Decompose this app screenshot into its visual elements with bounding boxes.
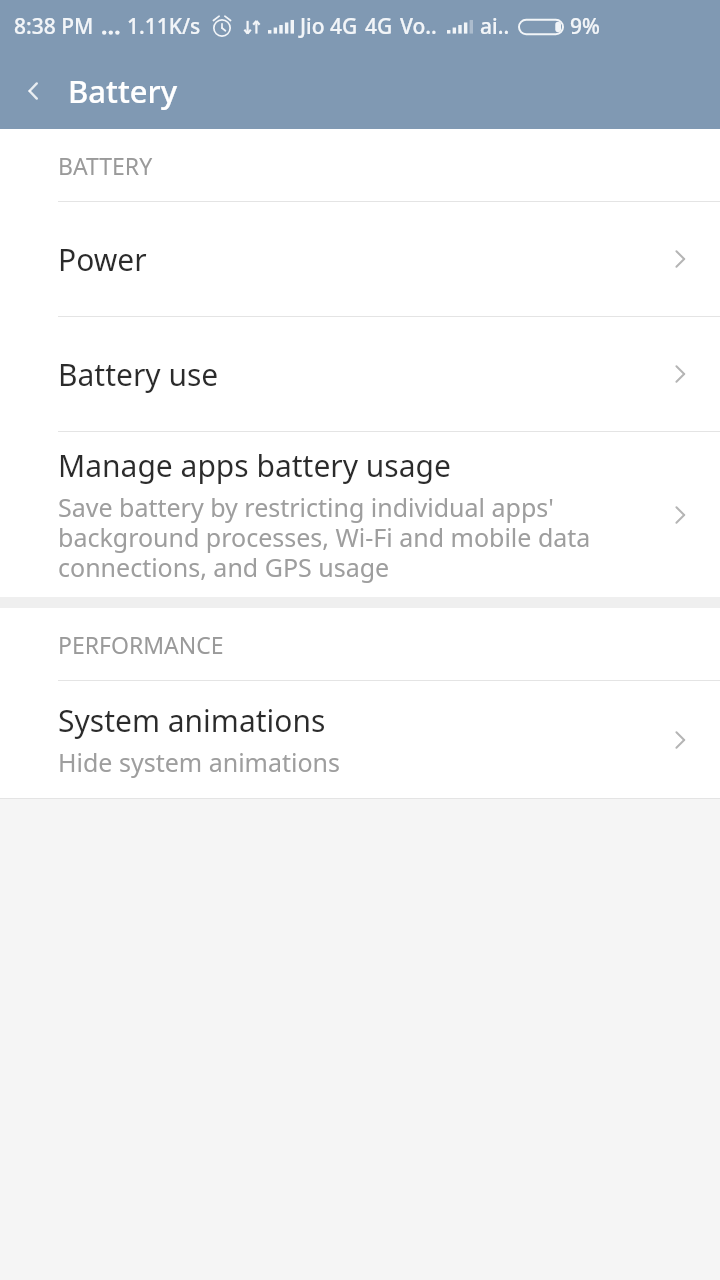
staticText: Manage apps battery usage [58, 445, 451, 486]
staticText: PERFORMANCE [58, 629, 224, 660]
staticText: Vo.. [400, 12, 437, 41]
staticText: System animations [58, 700, 326, 741]
button[interactable]: Power [0, 202, 720, 316]
staticText: ai.. [480, 12, 510, 41]
staticText: Hide system animations [58, 745, 341, 779]
staticText: 4G [365, 12, 393, 41]
staticText: 9% [570, 12, 600, 41]
button[interactable]: System animations [0, 681, 720, 798]
staticText: Save battery by restricting individual a… [58, 490, 646, 584]
staticText: Power [58, 239, 147, 280]
button[interactable]: Back [0, 53, 68, 129]
staticText: Jio 4G [300, 12, 358, 41]
staticText: 8:38 PM [14, 12, 94, 41]
staticText: 1.11K/s [127, 12, 201, 41]
button[interactable]: Battery use [0, 317, 720, 431]
staticText: BATTERY [58, 150, 153, 181]
staticText: Battery use [58, 354, 219, 395]
staticText: Battery [68, 70, 178, 112]
button[interactable]: Manage apps battery usage [0, 432, 720, 597]
